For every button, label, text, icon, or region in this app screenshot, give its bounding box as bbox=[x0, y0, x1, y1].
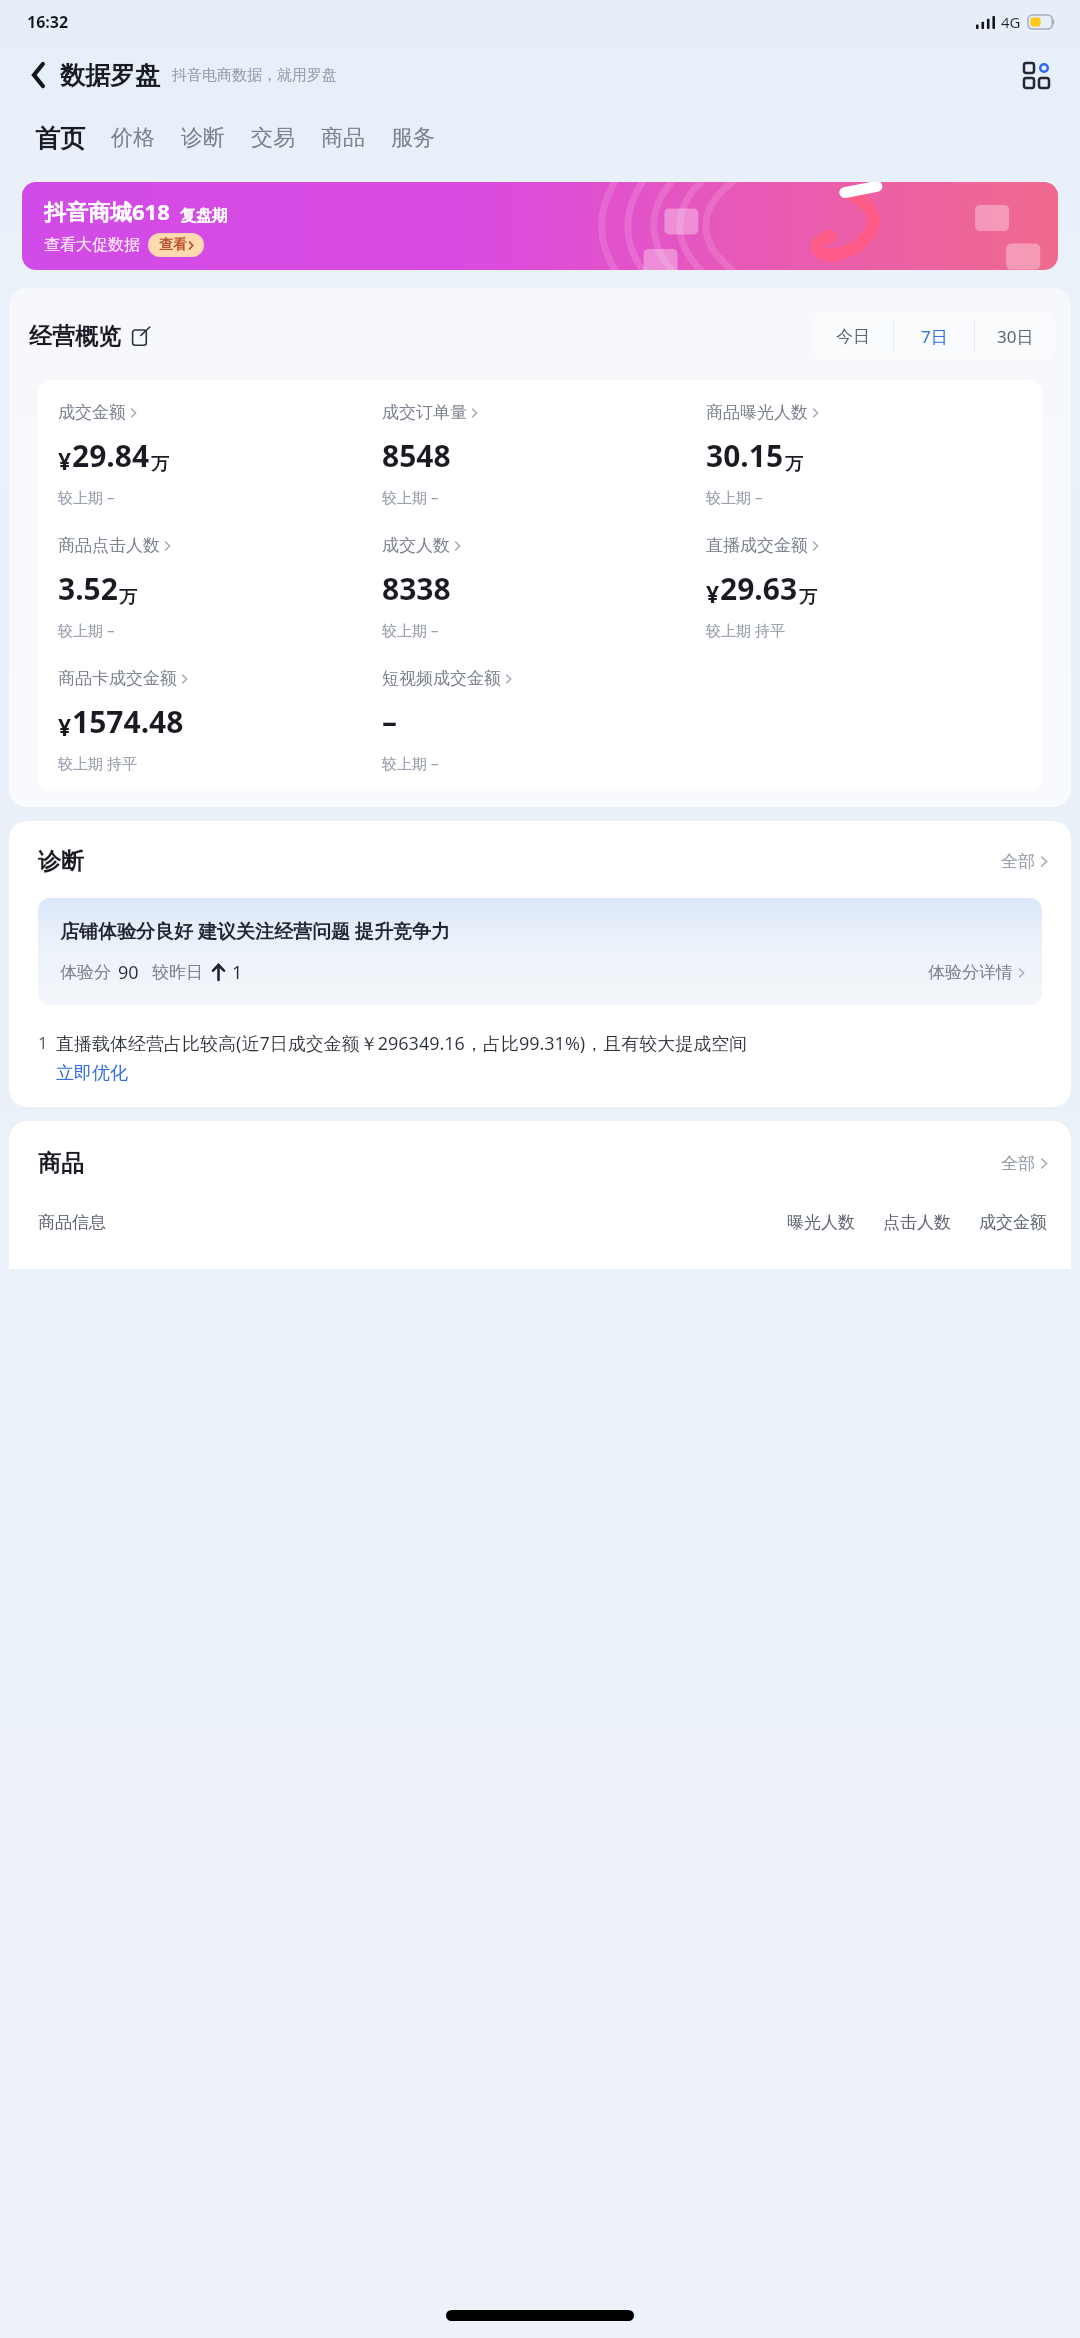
staticText: 1574.48 bbox=[72, 701, 184, 742]
staticText: 成交人数 bbox=[382, 535, 450, 556]
staticText: 成交金额 bbox=[979, 1212, 1047, 1233]
staticText: 商品曝光人数 bbox=[706, 402, 808, 423]
staticText: 诊断 bbox=[38, 847, 84, 876]
staticText: 1 bbox=[38, 1031, 48, 1054]
button[interactable]: 抖音商城618 bbox=[22, 182, 1058, 270]
staticText: 较上期 – bbox=[382, 487, 439, 507]
staticText: 较上期 – bbox=[58, 487, 115, 507]
staticText: 曝光人数 bbox=[787, 1212, 855, 1233]
staticText: 30.15 bbox=[706, 435, 784, 476]
button[interactable]: 全部 bbox=[1001, 851, 1047, 872]
staticText: 体验分 bbox=[60, 962, 111, 983]
button[interactable]: 经营概览 bbox=[29, 322, 150, 351]
staticText: 较上期 – bbox=[382, 620, 439, 640]
button[interactable]: 商品卡成交金额 bbox=[58, 668, 187, 773]
staticText: 数据罗盘 bbox=[60, 60, 160, 91]
button[interactable]: 商品点击人数 bbox=[58, 535, 170, 640]
staticText: 商品点击人数 bbox=[58, 535, 160, 556]
staticText: 8338 bbox=[382, 568, 451, 609]
staticText: 成交订单量 bbox=[382, 402, 467, 423]
staticText: 成交金额 bbox=[58, 402, 126, 423]
button[interactable]: 成交订单量 bbox=[382, 402, 477, 507]
button[interactable]: 立即优化 bbox=[56, 1062, 128, 1085]
button[interactable]: 店铺体验分良好 建议关注经营问题 提升竞争力 bbox=[38, 898, 1042, 1005]
button[interactable]: 成交人数 bbox=[382, 535, 460, 640]
button[interactable]: 价格 bbox=[98, 118, 168, 158]
staticText: 今日 bbox=[836, 326, 870, 347]
staticText: 商品 bbox=[38, 1149, 84, 1178]
staticText: 30日 bbox=[997, 325, 1034, 348]
button[interactable]: 交易 bbox=[238, 118, 308, 158]
staticText: 立即优化 bbox=[56, 1062, 128, 1085]
staticText: 查看大促数据 bbox=[44, 235, 140, 255]
button[interactable]: 查看 bbox=[148, 233, 204, 257]
staticText: 16:32 bbox=[27, 11, 69, 33]
staticText: 较上期 – bbox=[382, 753, 439, 773]
staticText: 全部 bbox=[1001, 851, 1035, 872]
staticText: 店铺体验分良好 建议关注经营问题 提升竞争力 bbox=[60, 918, 450, 944]
staticText: 交易 bbox=[251, 124, 295, 152]
staticText: 商品信息 bbox=[38, 1212, 106, 1233]
staticText: 4G bbox=[1001, 12, 1021, 32]
staticText: 查看 bbox=[159, 236, 187, 254]
staticText: 7日 bbox=[921, 325, 948, 348]
button[interactable]: 首页 bbox=[22, 117, 98, 160]
staticText: 8548 bbox=[382, 435, 451, 476]
staticText: 全部 bbox=[1001, 1153, 1035, 1174]
button[interactable]: 短视频成交金额 bbox=[382, 668, 511, 773]
staticText: 直播成交金额 bbox=[706, 535, 808, 556]
staticText: 较上期 – bbox=[58, 620, 115, 640]
staticText: ¥ bbox=[706, 578, 720, 609]
staticText: 万 bbox=[799, 586, 817, 609]
button[interactable]: 商品 bbox=[308, 118, 378, 158]
button[interactable]: 30日 bbox=[975, 312, 1055, 360]
button[interactable]: 7日 bbox=[894, 312, 974, 360]
staticText: 较上期 持平 bbox=[706, 620, 785, 640]
staticText: 万 bbox=[785, 453, 803, 476]
staticText: 商品卡成交金额 bbox=[58, 668, 177, 689]
staticText: 短视频成交金额 bbox=[382, 668, 501, 689]
button[interactable]: Back bbox=[22, 58, 56, 92]
button[interactable]: 服务 bbox=[378, 118, 448, 158]
staticText: 价格 bbox=[111, 124, 155, 152]
staticText: 抖音商城618 bbox=[44, 196, 170, 226]
staticText: 较上期 持平 bbox=[58, 753, 137, 773]
staticText: 首页 bbox=[35, 123, 85, 154]
staticText: 商品 bbox=[321, 124, 365, 152]
staticText: 万 bbox=[119, 586, 137, 609]
staticText: 29.84 bbox=[72, 435, 150, 476]
staticText: 万 bbox=[151, 453, 169, 476]
staticText: 抖音电商数据，就用罗盘 bbox=[172, 66, 337, 85]
button[interactable]: 今日 bbox=[813, 312, 893, 360]
staticText: 90 bbox=[118, 960, 139, 985]
staticText: 诊断 bbox=[181, 124, 225, 152]
staticText: 复盘期 bbox=[180, 206, 228, 226]
staticText: 服务 bbox=[391, 124, 435, 152]
staticText: 经营概览 bbox=[29, 322, 121, 351]
staticText: ¥ bbox=[58, 711, 72, 742]
staticText: 3.52 bbox=[58, 568, 118, 609]
button[interactable]: 成交金额 bbox=[58, 402, 169, 507]
staticText: 29.63 bbox=[720, 568, 798, 609]
staticText: 较昨日 bbox=[152, 962, 203, 983]
staticText: 点击人数 bbox=[883, 1212, 951, 1233]
staticText: ¥ bbox=[58, 445, 72, 476]
button[interactable]: 全部 bbox=[1001, 1153, 1047, 1174]
button[interactable]: Apps bbox=[1014, 53, 1058, 97]
button[interactable]: 体验分详情 bbox=[928, 962, 1024, 983]
staticText: 直播载体经营占比较高(近7日成交金额￥296349.16，占比99.31%)，且… bbox=[56, 1031, 748, 1056]
staticText: 1 bbox=[232, 960, 243, 985]
button[interactable]: 商品曝光人数 bbox=[706, 402, 818, 507]
staticText: 较上期 – bbox=[706, 487, 763, 507]
button[interactable]: 诊断 bbox=[168, 118, 238, 158]
button[interactable]: 直播成交金额 bbox=[706, 535, 818, 640]
staticText: 体验分详情 bbox=[928, 962, 1013, 983]
staticText: – bbox=[382, 701, 397, 742]
